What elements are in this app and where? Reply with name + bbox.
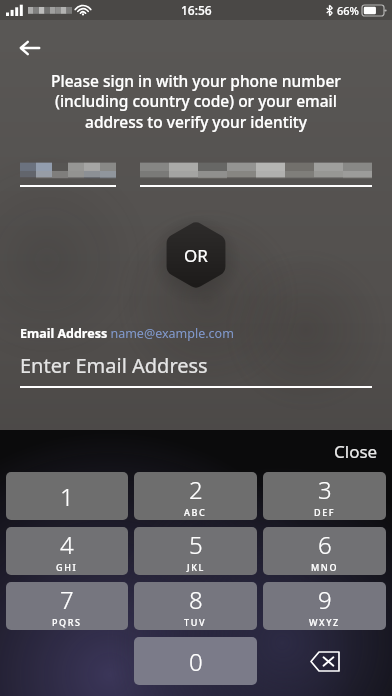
button[interactable]: Backspace [263, 637, 386, 685]
button[interactable]: 3 [263, 472, 386, 520]
button[interactable]: Enter Email Address [20, 352, 372, 388]
staticText: 6 [318, 528, 332, 561]
staticText: OR [184, 244, 208, 267]
button[interactable]: 7 [6, 582, 128, 630]
button[interactable]: 1 [6, 472, 128, 520]
staticText: Enter Email Address [20, 352, 208, 379]
staticText: PQRS [52, 616, 82, 628]
button[interactable]: OR [162, 221, 230, 289]
staticText: Email Address name@example.com [20, 325, 234, 342]
staticText: JKL [187, 561, 205, 573]
button[interactable]: 8 [134, 582, 257, 630]
button[interactable]: 0 [134, 637, 257, 685]
staticText: TUV [184, 616, 207, 628]
staticText: 0 [189, 645, 203, 678]
staticText: 5 [189, 528, 203, 561]
staticText: 8 [189, 583, 203, 616]
staticText: 7 [60, 583, 74, 616]
staticText: 66% [337, 3, 359, 18]
button[interactable]: 6 [263, 527, 386, 575]
staticText: 2 [189, 473, 203, 506]
button[interactable]: Close [320, 434, 392, 469]
staticText: 4 [60, 528, 74, 561]
button[interactable]: 5 [134, 527, 257, 575]
staticText: Please sign in with your phone number (i… [26, 70, 366, 133]
button[interactable]: Back [10, 28, 50, 68]
button[interactable]: 4 [6, 527, 128, 575]
staticText: 16:56 [181, 2, 212, 18]
staticText: 1 [60, 480, 74, 513]
staticText: 9 [318, 583, 332, 616]
staticText: WXYZ [309, 616, 340, 628]
button[interactable]: 9 [263, 582, 386, 630]
staticText: DEF [314, 506, 336, 518]
button[interactable]: 2 [134, 472, 257, 520]
staticText: ABC [184, 506, 207, 518]
staticText: 3 [318, 473, 332, 506]
staticText: GHI [56, 561, 78, 573]
staticText: MNO [311, 561, 339, 573]
